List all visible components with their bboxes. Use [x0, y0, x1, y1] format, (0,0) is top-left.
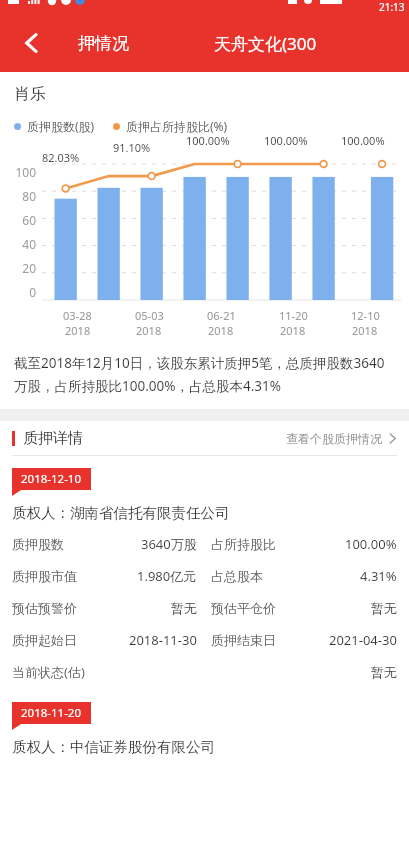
staticText: 质押股市值: [12, 568, 77, 584]
staticText: 40: [0, 236, 36, 252]
staticText: 2018: [136, 323, 162, 338]
staticText: 21:13: [379, 0, 405, 14]
staticText: 肖乐: [14, 84, 46, 104]
staticText: 80: [0, 188, 36, 204]
staticText: 06-21: [207, 308, 236, 323]
staticText: 预估预警价: [12, 600, 77, 616]
staticText: 占总股本: [211, 568, 263, 584]
staticText: 质权人：湖南省信托有限责任公司: [12, 504, 230, 522]
staticText: 质押详情: [23, 429, 83, 448]
staticText: 100.00%: [264, 133, 308, 148]
staticText: 60: [0, 212, 36, 228]
button[interactable]: 质权人：湖南省信托有限责任公司: [0, 498, 409, 688]
staticText: 2018: [208, 323, 234, 338]
staticText: 100.00%: [341, 133, 385, 148]
staticText: 11-20: [279, 308, 308, 323]
staticText: 占所持股比: [211, 536, 276, 552]
staticText: 1.980亿元: [137, 567, 197, 585]
staticText: 2018: [352, 323, 378, 338]
staticText: 查看个股质押情况: [286, 431, 382, 446]
staticText: 2018-12-10: [21, 471, 82, 487]
staticText: 质押股数: [12, 536, 64, 552]
staticText: 暂无: [371, 600, 397, 616]
staticText: 82.03%: [42, 150, 80, 165]
staticText: 2021-04-30: [329, 631, 397, 649]
button[interactable]: Back: [10, 21, 54, 65]
staticText: 0: [0, 284, 36, 300]
staticText: 03-28: [63, 308, 92, 323]
staticText: 100.00%: [186, 133, 230, 148]
staticText: 12-10: [351, 308, 380, 323]
staticText: 3640万股: [141, 535, 197, 553]
staticText: 暂无: [371, 664, 397, 680]
staticText: 20: [0, 260, 36, 276]
staticText: 质权人：中信证券股份有限公司: [12, 738, 215, 756]
staticText: 2018-11-20: [21, 705, 82, 721]
staticText: 100: [0, 164, 36, 180]
staticText: 2018-11-30: [129, 631, 197, 649]
staticText: 质押起始日: [12, 632, 77, 648]
staticText: 100.00%: [345, 535, 397, 553]
staticText: 暂无: [171, 600, 197, 616]
staticText: 91.10%: [113, 140, 151, 155]
staticText: 质押结束日: [211, 632, 276, 648]
staticText: 预估平仓价: [211, 600, 276, 616]
staticText: 押情况: [78, 33, 129, 54]
staticText: 05-03: [135, 308, 164, 323]
button[interactable]: 查看个股质押情况: [286, 431, 409, 446]
staticText: 质押股数(股): [27, 118, 95, 134]
staticText: 质押占所持股比(%): [126, 118, 228, 134]
staticText: 2018: [280, 323, 306, 338]
staticText: 截至2018年12月10日，该股东累计质押5笔，总质押股数3640万股，占所持股…: [14, 354, 395, 395]
staticText: 当前状态(估): [12, 663, 85, 681]
staticText: 4.31%: [360, 567, 397, 585]
staticText: 天舟文化(300: [214, 32, 317, 55]
staticText: 2018: [65, 323, 91, 338]
